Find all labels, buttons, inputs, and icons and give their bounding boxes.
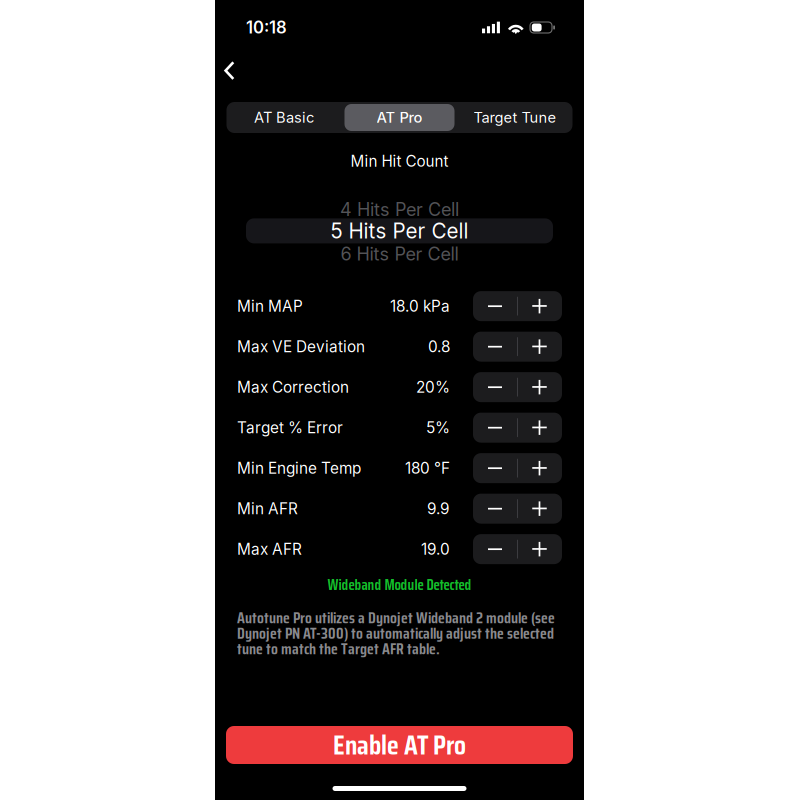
button[interactable]: Enable AT Pro — [226, 726, 573, 764]
staticText: 5% — [426, 418, 450, 437]
button[interactable]: Increase — [517, 534, 562, 564]
button[interactable]: Increase — [517, 372, 562, 402]
staticText: Enable AT Pro — [333, 723, 466, 766]
staticText: Max AFR — [237, 540, 302, 558]
staticText: Max VE Deviation — [237, 337, 365, 356]
button[interactable]: Increase — [517, 453, 562, 483]
button[interactable]: Target Tune — [457, 102, 572, 133]
staticText: Min AFR — [237, 499, 298, 518]
button[interactable]: Back — [216, 55, 243, 86]
staticText: Target Tune — [473, 109, 556, 126]
button[interactable]: Decrease — [473, 372, 517, 402]
staticText: Wideband Module Detected — [327, 573, 471, 596]
staticText: 5 Hits Per Cell — [330, 218, 468, 243]
staticText: 20% — [416, 378, 450, 396]
staticText: 9.9 — [427, 499, 450, 518]
button[interactable]: Decrease — [473, 453, 517, 483]
staticText: Min Engine Temp — [237, 459, 361, 477]
button[interactable]: AT Basic — [226, 102, 341, 133]
staticText: 19.0 — [421, 540, 450, 558]
staticText: tune to match the Target AFR table. — [237, 637, 440, 661]
staticText: 6 Hits Per Cell — [340, 243, 458, 265]
staticText: 0.8 — [428, 337, 450, 356]
staticText: 18.0 kPa — [390, 297, 450, 315]
staticText: Max Correction — [237, 378, 349, 396]
button[interactable]: Decrease — [473, 534, 517, 564]
staticText: 180 °F — [405, 459, 450, 477]
staticText: Min MAP — [237, 297, 303, 315]
staticText: 10:18 — [246, 17, 287, 38]
staticText: Dynojet PN AT-300) to automatically adju… — [237, 621, 554, 646]
staticText: Min Hit Count — [350, 152, 448, 170]
button[interactable]: Decrease — [473, 413, 517, 443]
staticText: AT Pro — [376, 109, 422, 126]
button[interactable]: Increase — [517, 332, 562, 362]
button[interactable]: AT Pro — [341, 102, 457, 133]
staticText: 4 Hits Per Cell — [340, 198, 459, 220]
button[interactable]: Increase — [517, 494, 562, 524]
button[interactable]: Decrease — [473, 332, 517, 362]
button[interactable]: Increase — [517, 413, 562, 443]
button[interactable]: Decrease — [473, 494, 517, 524]
staticText: AT Basic — [254, 109, 314, 126]
staticText: Target % Error — [237, 418, 343, 437]
button[interactable]: Decrease — [473, 291, 517, 321]
button[interactable]: Increase — [517, 291, 562, 321]
staticText: Autotune Pro utilizes a Dynojet Wideband… — [237, 605, 555, 630]
